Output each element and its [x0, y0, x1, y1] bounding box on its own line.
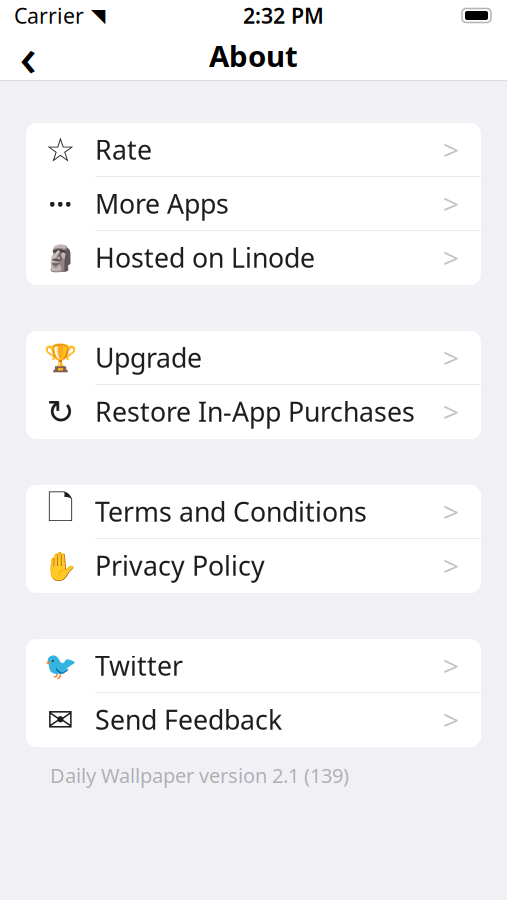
staticText: Hosted on Linode — [95, 240, 315, 275]
staticText: 🏆 — [44, 343, 77, 373]
button[interactable]: ☆ — [26, 123, 481, 177]
staticText: Restore In-App Purchases — [95, 394, 415, 429]
staticText: About — [209, 36, 298, 75]
staticText: ✉ — [47, 702, 74, 738]
button[interactable]: 🐦 — [26, 639, 481, 693]
staticText: Carrier — [14, 1, 84, 30]
staticText: Send Feedback — [95, 702, 282, 737]
button[interactable]: Back — [0, 31, 56, 79]
button[interactable]: ↻ — [26, 385, 481, 439]
button[interactable]: ••• — [26, 177, 481, 231]
staticText: > — [443, 185, 459, 222]
staticText: Privacy Policy — [95, 548, 265, 583]
staticText: > — [443, 393, 459, 430]
staticText: ✋ — [43, 550, 78, 582]
staticText: Upgrade — [95, 340, 202, 375]
staticText: ••• — [48, 191, 72, 217]
staticText: 🗋 — [47, 484, 74, 540]
staticText: > — [443, 547, 459, 584]
staticText: More Apps — [95, 186, 229, 221]
button[interactable]: 🗿 — [26, 231, 481, 285]
staticText: > — [443, 647, 459, 684]
staticText: ◥ — [91, 5, 105, 26]
button[interactable]: ✉ — [26, 693, 481, 747]
staticText: Twitter — [95, 648, 183, 683]
staticText: Rate — [95, 132, 152, 167]
staticText: > — [443, 339, 459, 376]
staticText: > — [443, 239, 459, 276]
staticText: ‹ — [19, 20, 36, 91]
button[interactable]: ✋ — [26, 539, 481, 593]
staticText: ☆ — [45, 131, 75, 169]
staticText: 🗿 — [44, 243, 76, 272]
button[interactable]: 🏆 — [26, 331, 481, 385]
staticText: ↻ — [46, 393, 74, 431]
staticText: 2:32 PM — [243, 1, 324, 30]
staticText: > — [443, 701, 459, 738]
button[interactable]: 🗋 — [26, 485, 481, 539]
staticText: > — [443, 131, 459, 168]
staticText: Daily Wallpaper version 2.1 (139) — [50, 762, 349, 789]
staticText: 🐦 — [44, 651, 77, 681]
staticText: Terms and Conditions — [95, 494, 367, 529]
staticText: > — [443, 493, 459, 530]
